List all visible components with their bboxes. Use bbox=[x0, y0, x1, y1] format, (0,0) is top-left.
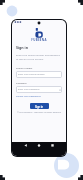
other: Show password bbox=[59, 89, 61, 91]
staticText: Sign in bbox=[16, 45, 29, 50]
button[interactable]: Forgot your password? bbox=[16, 95, 41, 98]
staticText: Phone Number bbox=[16, 67, 33, 70]
button[interactable]: Sign in bbox=[30, 103, 49, 109]
staticText: Enter your phone number bbox=[18, 73, 45, 76]
staticText: FUBEENA bbox=[12, 38, 66, 42]
staticText: Enter your phone number and password to … bbox=[16, 54, 62, 60]
staticText: Enter your password bbox=[18, 88, 40, 91]
button[interactable]: Enter your phone number bbox=[16, 71, 62, 78]
staticText: Password bbox=[16, 82, 27, 85]
button[interactable]: Enter your password bbox=[16, 86, 62, 93]
staticText: Sign in bbox=[35, 105, 44, 108]
staticText: © 2023 Fubeena | Copyrights All Rights R… bbox=[16, 111, 62, 114]
